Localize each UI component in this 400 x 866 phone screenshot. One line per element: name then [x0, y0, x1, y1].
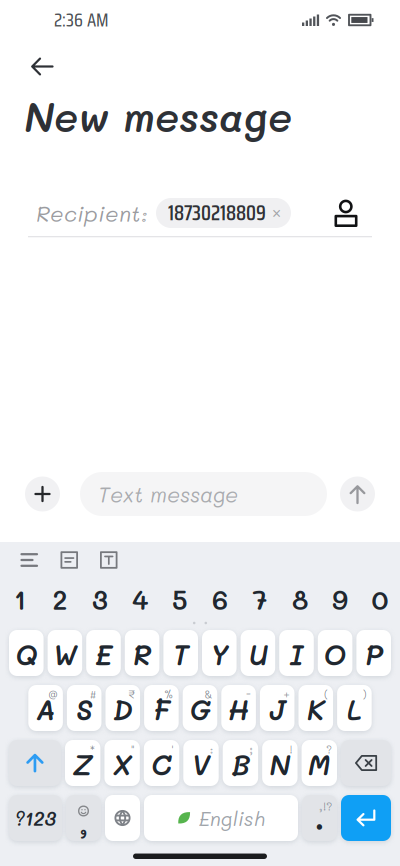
button[interactable]: Y: [202, 630, 237, 676]
staticText: E: [95, 636, 112, 672]
button[interactable]: ;: [223, 740, 258, 786]
staticText: C: [151, 746, 172, 782]
staticText: Z: [73, 746, 93, 782]
staticText: !: [290, 741, 293, 756]
button[interactable]: :: [183, 740, 219, 786]
button[interactable]: !: [262, 740, 297, 786]
staticText: ?123: [14, 805, 56, 830]
staticText: ,!?: [319, 798, 332, 814]
staticText: V: [191, 746, 210, 782]
staticText: B: [231, 746, 249, 782]
button[interactable]: 5: [160, 579, 200, 615]
staticText: U: [248, 636, 267, 672]
staticText: 9: [332, 582, 348, 616]
button[interactable]: 3: [80, 579, 120, 615]
staticText: T: [173, 636, 189, 672]
staticText: ,: [79, 807, 87, 841]
button[interactable]: 1: [0, 579, 40, 615]
staticText: #: [89, 686, 96, 701]
staticText: 7: [252, 582, 267, 616]
button[interactable]: ): [337, 685, 372, 731]
button[interactable]: Change language: [105, 795, 140, 841]
staticText: 8: [292, 582, 308, 616]
staticText: M: [308, 746, 331, 782]
staticText: 1: [14, 582, 26, 616]
button[interactable]: Enter: [341, 795, 391, 841]
staticText: A: [36, 691, 55, 727]
button[interactable]: %: [144, 685, 179, 731]
staticText: ': [171, 741, 174, 756]
button[interactable]: E: [86, 630, 121, 676]
staticText: :: [210, 741, 214, 756]
button[interactable]: ": [104, 740, 140, 786]
button[interactable]: (: [298, 685, 333, 731]
staticText: 4: [132, 582, 148, 616]
staticText: (: [324, 686, 328, 701]
button[interactable]: Back: [31, 57, 54, 76]
button[interactable]: T: [163, 630, 198, 676]
button[interactable]: Text editing: [100, 551, 117, 569]
button[interactable]: I: [279, 630, 314, 676]
staticText: @: [48, 686, 58, 701]
button[interactable]: Shift: [9, 740, 61, 786]
button[interactable]: Keyboard menu: [21, 553, 37, 567]
staticText: I: [289, 636, 303, 672]
button[interactable]: 18730218809: [156, 198, 291, 228]
staticText: +: [283, 686, 289, 701]
button[interactable]: ₹: [105, 685, 140, 731]
staticText: D: [113, 691, 133, 727]
button[interactable]: &: [183, 685, 217, 731]
staticText: G: [189, 691, 210, 727]
staticText: W: [53, 636, 77, 672]
staticText: J: [269, 691, 286, 727]
button[interactable]: 6: [200, 579, 240, 615]
button[interactable]: #: [67, 685, 101, 731]
button[interactable]: U: [241, 630, 275, 676]
button[interactable]: O: [318, 630, 352, 676]
staticText: S: [76, 691, 93, 727]
button[interactable]: ': [144, 740, 179, 786]
staticText: ?: [326, 741, 332, 756]
button[interactable]: 9: [320, 579, 360, 615]
button[interactable]: *: [65, 740, 100, 786]
button[interactable]: Choose contact: [335, 199, 357, 226]
button[interactable]: @: [28, 685, 63, 731]
button[interactable]: Q: [9, 630, 44, 676]
button[interactable]: 0: [360, 579, 400, 615]
button[interactable]: 8: [280, 579, 320, 615]
button[interactable]: ?: [302, 740, 337, 786]
button[interactable]: Symbols: [9, 795, 62, 841]
staticText: Y: [210, 636, 228, 672]
button[interactable]: Send: [340, 476, 375, 511]
button[interactable]: +: [260, 685, 294, 731]
button[interactable]: W: [48, 630, 82, 676]
button[interactable]: Add attachment: [25, 476, 60, 511]
staticText: Recipient:: [36, 199, 148, 227]
staticText: 18730218809: [168, 197, 266, 229]
button[interactable]: R: [125, 630, 159, 676]
button[interactable]: 2: [40, 579, 80, 615]
staticText: Text message: [98, 480, 238, 508]
staticText: R: [133, 636, 152, 672]
button[interactable]: Delete: [341, 740, 391, 786]
staticText: 6: [212, 582, 228, 616]
staticText: ;: [249, 741, 253, 756]
button[interactable]: Clipboard: [60, 551, 78, 569]
button[interactable]: Space, English: [144, 795, 298, 841]
button[interactable]: -: [221, 685, 256, 731]
button[interactable]: Text message: [80, 472, 327, 516]
button[interactable]: Period: [302, 795, 337, 841]
staticText: ×: [272, 202, 281, 224]
button[interactable]: P: [356, 630, 391, 676]
staticText: New message: [24, 90, 292, 142]
staticText: 2: [52, 582, 67, 616]
staticText: 2:36 AM: [54, 5, 109, 35]
button[interactable]: Comma: [66, 795, 101, 841]
staticText: ₹: [128, 686, 135, 701]
staticText: %: [164, 686, 174, 701]
staticText: O: [324, 636, 347, 672]
button[interactable]: 4: [120, 579, 160, 615]
button[interactable]: 7: [240, 579, 280, 615]
staticText: P: [365, 636, 383, 672]
staticText: 0: [371, 582, 388, 616]
